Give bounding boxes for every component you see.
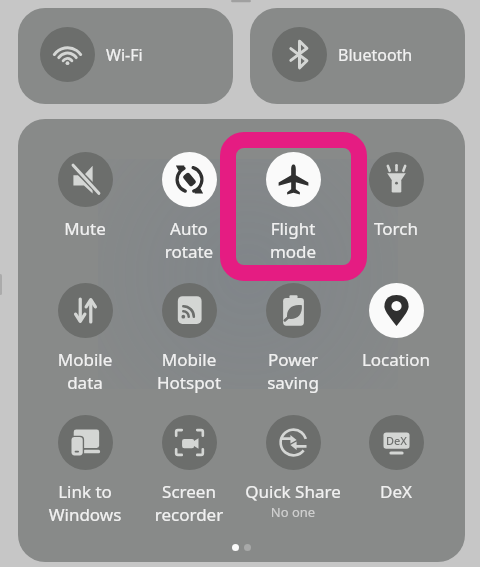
- button[interactable]: Quick Share: [241, 411, 345, 527]
- button[interactable]: Mobile Hotspot: [137, 279, 241, 395]
- staticText: Power saving: [241, 348, 345, 394]
- button[interactable]: Location: [344, 279, 448, 395]
- staticText: Quick Share: [241, 480, 345, 503]
- button[interactable]: Torch: [344, 148, 448, 264]
- staticText: DeX: [344, 480, 448, 503]
- staticText: Wi-Fi: [106, 44, 143, 66]
- button[interactable]: Auto rotate: [137, 148, 241, 264]
- staticText: Mute: [33, 217, 137, 240]
- staticText: Mobile data: [33, 348, 137, 394]
- button[interactable]: Flight mode: [241, 148, 345, 264]
- button[interactable]: Screen recorder: [137, 411, 241, 527]
- button[interactable]: Mobile data: [33, 279, 137, 395]
- staticText: Screen recorder: [137, 480, 241, 526]
- staticText: Flight mode: [241, 217, 345, 263]
- button[interactable]: DeX: [344, 411, 448, 527]
- staticText: Link to Windows: [33, 480, 137, 526]
- button[interactable]: Link to Windows: [33, 411, 137, 527]
- button[interactable]: Bluetooth: [250, 8, 465, 104]
- staticText: No one: [241, 503, 345, 521]
- staticText: DeX: [386, 433, 408, 448]
- staticText: Mobile Hotspot: [137, 348, 241, 394]
- button[interactable]: Power saving: [241, 279, 345, 395]
- staticText: Bluetooth: [338, 44, 413, 66]
- staticText: Torch: [344, 217, 448, 240]
- staticText: Location: [344, 348, 448, 371]
- button[interactable]: Wi-Fi: [18, 8, 233, 104]
- button[interactable]: Mute: [33, 148, 137, 264]
- staticText: Auto rotate: [137, 217, 241, 263]
